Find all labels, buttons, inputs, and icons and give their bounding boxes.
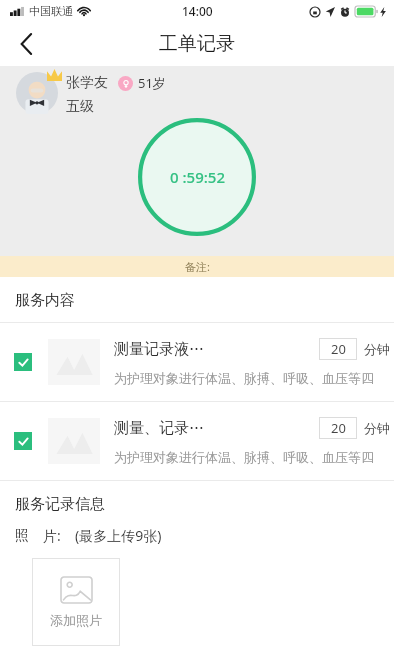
button[interactable]: 已选择: [14, 432, 32, 450]
staticText: 测量、记录脉搏: [114, 419, 216, 438]
button[interactable]: 已选择: [0, 323, 394, 401]
staticText: 20: [331, 419, 346, 437]
staticText: 张学友: [66, 74, 108, 92]
staticText: 20: [331, 340, 346, 358]
staticText: 服务内容: [15, 291, 75, 310]
staticText: 14:00: [182, 3, 213, 19]
staticText: 备注:: [185, 259, 210, 274]
staticText: 照: [15, 527, 29, 545]
staticText: 片:: [43, 526, 61, 545]
button[interactable]: 20: [319, 417, 357, 439]
staticText: 为护理对象进行体温、脉搏、呼吸、血压等四: [114, 370, 374, 386]
button[interactable]: 20: [319, 338, 357, 360]
staticText: (最多上传9张): [75, 526, 162, 545]
button[interactable]: 已选择: [14, 353, 32, 371]
button[interactable]: 添加照片: [32, 558, 120, 646]
staticText: 服务记录信息: [15, 495, 105, 514]
staticText: 分钟: [364, 341, 390, 357]
button[interactable]: 返回: [6, 24, 46, 64]
staticText: 分钟: [364, 420, 390, 436]
staticText: 中国联通: [29, 4, 73, 18]
staticText: 测量记录液体出入量: [114, 340, 216, 359]
staticText: 添加照片: [50, 612, 102, 628]
staticText: 51岁: [138, 74, 166, 92]
staticText: 五级: [66, 98, 94, 116]
staticText: 0 :59:52: [170, 167, 225, 187]
button[interactable]: 已选择: [0, 402, 394, 480]
staticText: 为护理对象进行体温、脉搏、呼吸、血压等四: [114, 449, 374, 465]
staticText: 工单记录: [159, 32, 235, 56]
